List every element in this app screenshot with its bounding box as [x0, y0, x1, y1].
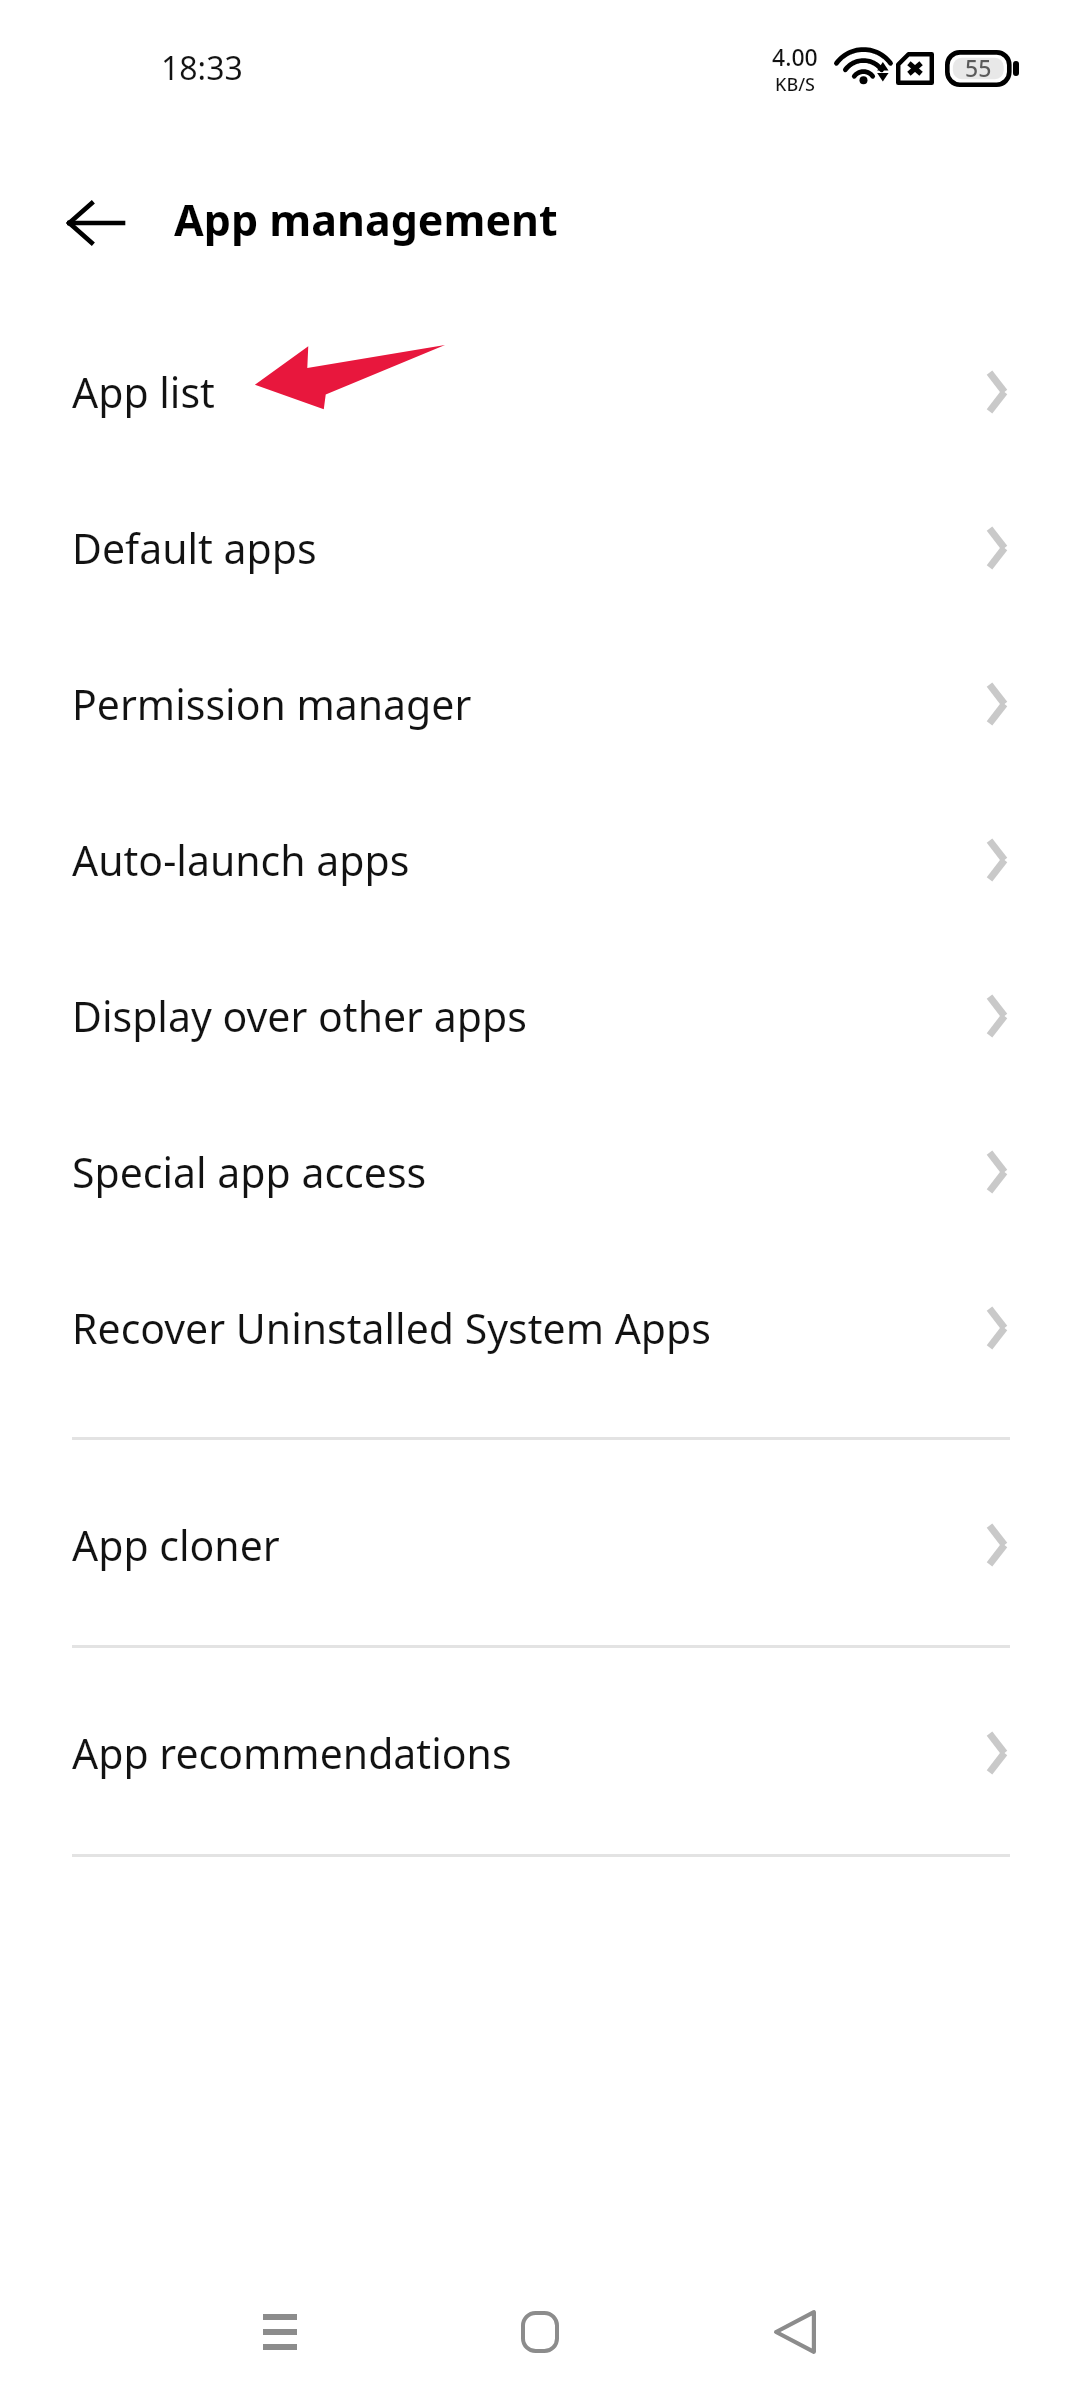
staticText: Permission manager [72, 676, 986, 732]
button[interactable]: App list [0, 314, 1080, 470]
button[interactable]: Recover Uninstalled System Apps [0, 1250, 1080, 1406]
button[interactable]: Recent apps [220, 2272, 340, 2392]
button[interactable]: App recommendations [0, 1675, 1080, 1831]
staticText: App recommendations [72, 1725, 986, 1781]
staticText: Display over other apps [72, 988, 986, 1044]
button[interactable]: Back [735, 2272, 855, 2392]
staticText: 4.00 [772, 41, 818, 72]
button[interactable]: Special app access [0, 1094, 1080, 1250]
staticText: 55 [965, 52, 992, 83]
button[interactable]: Default apps [0, 470, 1080, 626]
button[interactable]: Display over other apps [0, 938, 1080, 1094]
button[interactable]: Home [480, 2272, 600, 2392]
staticText: Auto-launch apps [72, 832, 986, 888]
button[interactable]: Permission manager [0, 626, 1080, 782]
button[interactable]: App cloner [0, 1467, 1080, 1623]
staticText: Special app access [72, 1144, 986, 1200]
button[interactable]: Back [52, 180, 138, 266]
staticText: App list [72, 364, 986, 420]
staticText: Default apps [72, 520, 986, 576]
staticText: 18:33 [161, 46, 243, 90]
staticText: Recover Uninstalled System Apps [72, 1300, 986, 1356]
staticText: App cloner [72, 1517, 986, 1573]
staticText: KB/S [775, 72, 815, 97]
staticText: App management [174, 190, 558, 249]
button[interactable]: Auto-launch apps [0, 782, 1080, 938]
